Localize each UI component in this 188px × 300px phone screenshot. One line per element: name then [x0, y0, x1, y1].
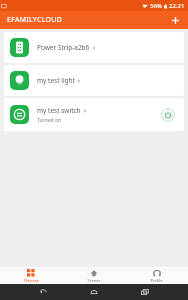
staticText: 56% [150, 2, 162, 10]
button[interactable]: Power Strip-a2b6 [4, 32, 184, 63]
button[interactable]: Add device [167, 12, 183, 28]
button[interactable]: Profile [125, 268, 188, 283]
staticText: Scenes [87, 278, 101, 283]
button[interactable]: Toggle power [158, 105, 178, 125]
staticText: 22:21 [169, 2, 185, 10]
staticText: Turned on [37, 117, 62, 124]
staticText: my test switch [37, 106, 81, 115]
button[interactable]: my test switch [4, 98, 184, 131]
button[interactable]: my test light [4, 65, 184, 96]
button[interactable]: Recent apps [137, 284, 153, 300]
staticText: my test light [37, 76, 75, 85]
button[interactable]: Devices [0, 268, 62, 283]
button[interactable]: Home [86, 284, 102, 300]
staticText: Profile [150, 278, 163, 283]
button[interactable]: Scenes [62, 268, 125, 283]
staticText: EFAMILYCLOUD [7, 15, 63, 25]
staticText: Devices [24, 278, 39, 283]
staticText: Power Strip-a2b6 [37, 43, 90, 52]
button[interactable]: Back [35, 284, 51, 300]
